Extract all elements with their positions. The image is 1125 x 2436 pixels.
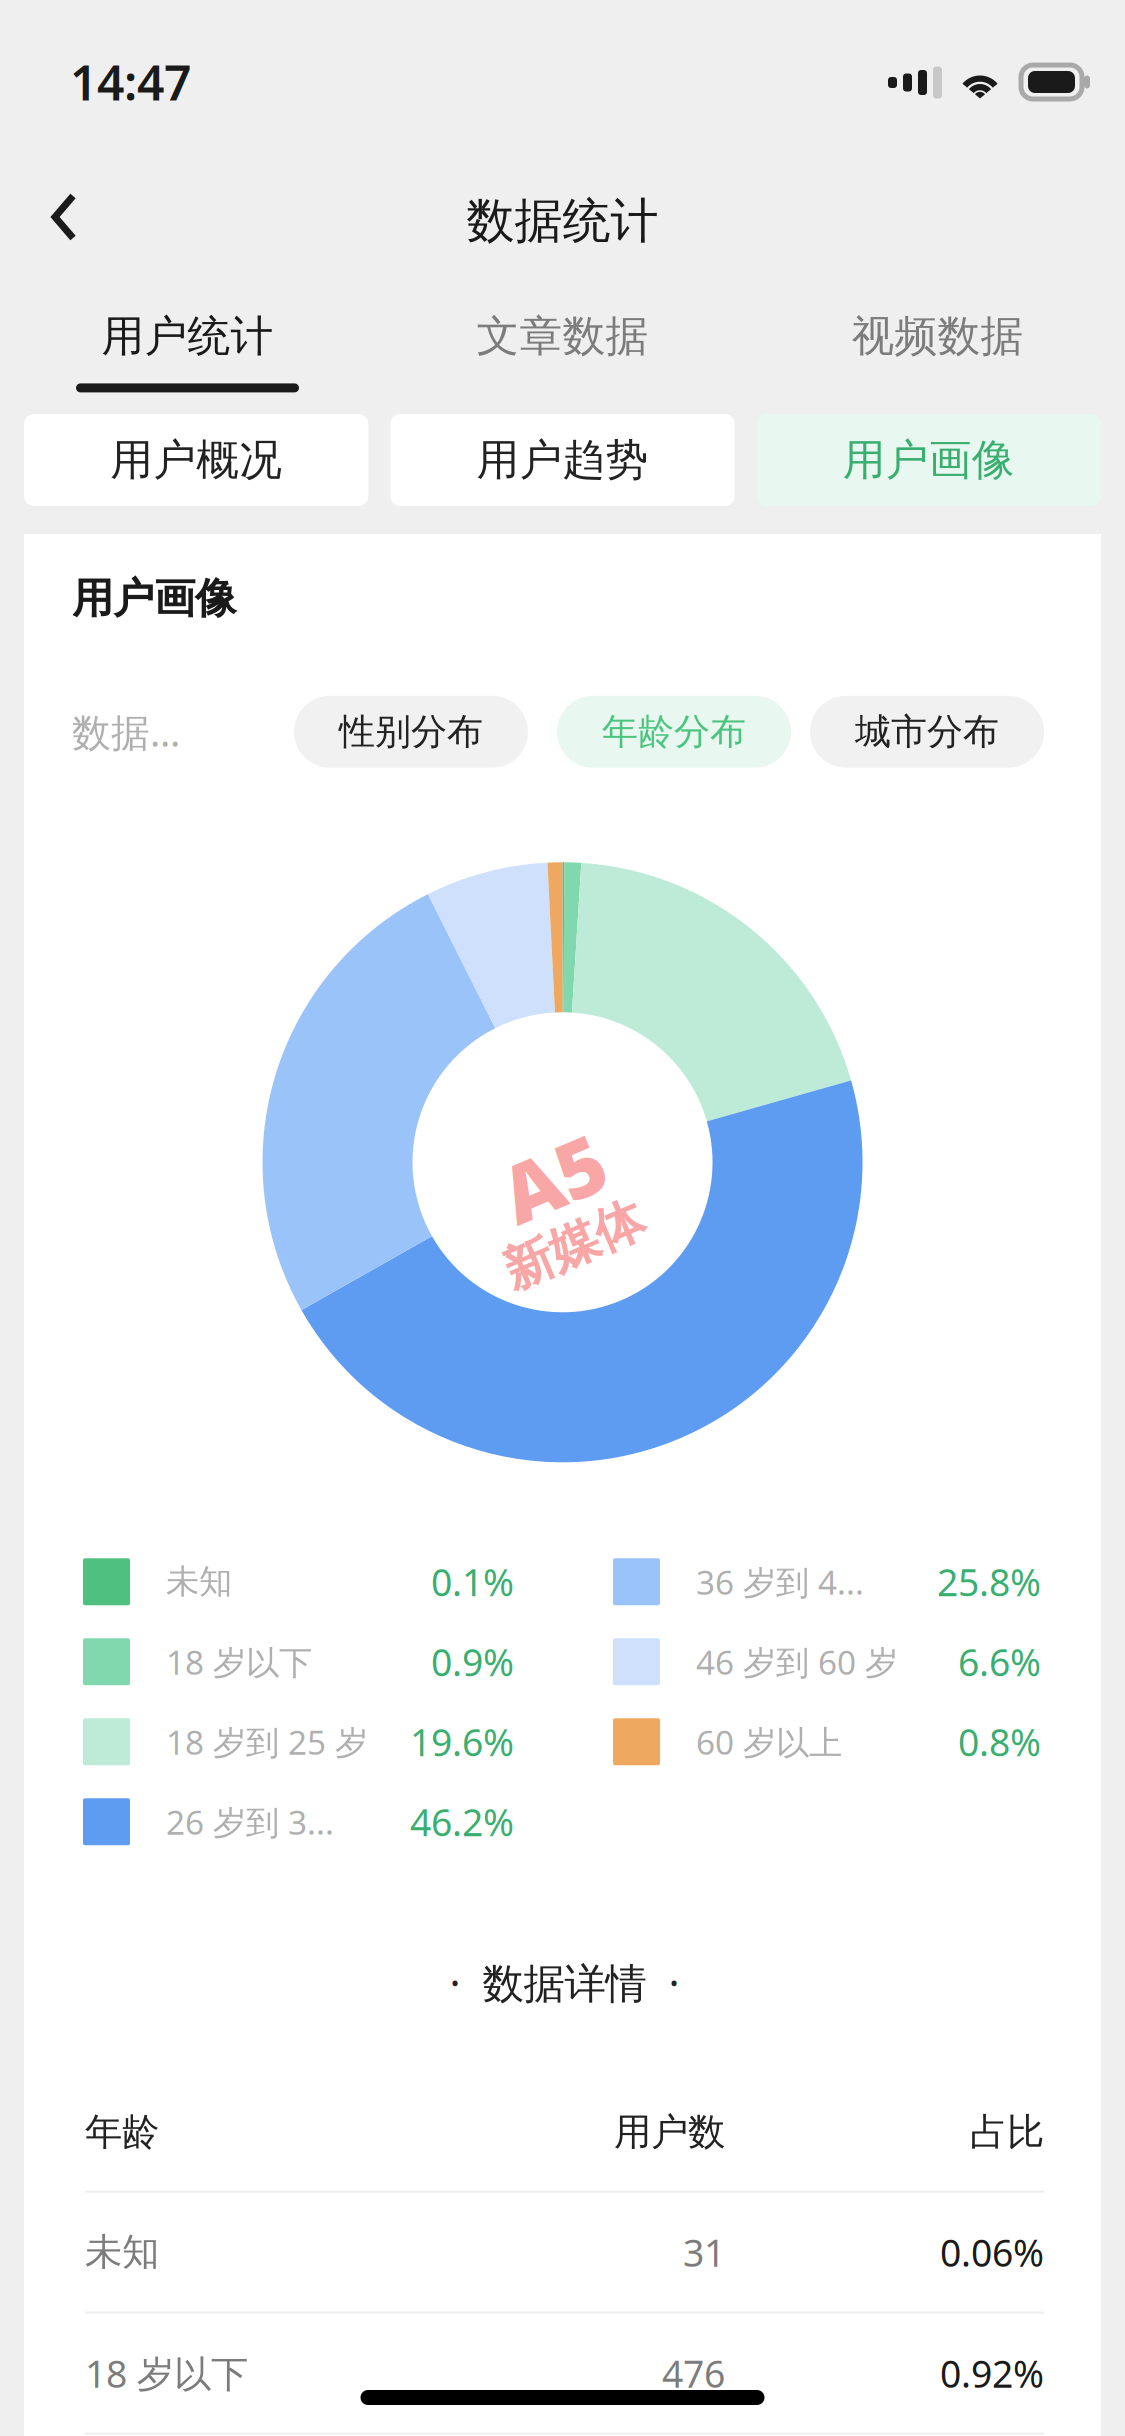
- staticText: 26 岁到 3...: [166, 1800, 334, 1844]
- staticText: A5: [501, 1124, 606, 1230]
- button[interactable]: Back: [19, 168, 109, 274]
- staticText: 数据统计: [466, 191, 658, 250]
- staticText: 数据...: [72, 706, 180, 757]
- staticText: 文章数据: [476, 310, 648, 362]
- staticText: 25.8%: [937, 1557, 1041, 1607]
- staticText: 城市分布: [855, 710, 999, 754]
- staticText: 0.06%: [940, 2227, 1044, 2277]
- staticText: 0.8%: [958, 1717, 1041, 1767]
- staticText: 未知: [166, 1561, 232, 1602]
- button[interactable]: 性别分布: [294, 696, 528, 768]
- staticText: 用户统计: [101, 310, 273, 362]
- staticText: 18 岁以下: [85, 2348, 248, 2398]
- staticText: 年龄分布: [602, 710, 746, 754]
- staticText: 18 岁以下: [166, 1640, 312, 1684]
- staticText: 6.6%: [958, 1637, 1041, 1687]
- staticText: · 数据详情 ·: [449, 1955, 679, 2010]
- staticText: 60 岁以上: [696, 1720, 842, 1764]
- staticText: 用户概况: [110, 434, 282, 486]
- button[interactable]: 城市分布: [810, 696, 1044, 768]
- button[interactable]: 用户趋势: [390, 414, 735, 506]
- staticText: 18 岁到 25 岁: [166, 1720, 368, 1764]
- staticText: 0.1%: [431, 1557, 514, 1607]
- staticText: 46.2%: [410, 1797, 514, 1847]
- staticText: 14:47: [70, 50, 191, 114]
- staticText: 用户数: [614, 2109, 725, 2155]
- button[interactable]: 用户概况: [24, 414, 368, 506]
- staticText: 视频数据: [851, 310, 1023, 362]
- button[interactable]: 年龄分布: [557, 696, 791, 768]
- staticText: 年龄: [85, 2109, 159, 2155]
- button[interactable]: 用户画像: [757, 414, 1101, 506]
- staticText: 性别分布: [339, 710, 483, 754]
- staticText: 19.6%: [410, 1717, 514, 1767]
- staticText: 用户画像: [843, 434, 1015, 486]
- button[interactable]: 文章数据: [375, 278, 750, 398]
- staticText: 476: [662, 2348, 725, 2398]
- staticText: 未知: [85, 2229, 159, 2275]
- staticText: 31: [683, 2227, 725, 2277]
- staticText: 46 岁到 60 岁: [696, 1640, 898, 1684]
- staticText: 0.92%: [940, 2348, 1044, 2398]
- staticText: 36 岁到 4...: [696, 1560, 864, 1604]
- staticText: 用户画像: [72, 573, 236, 624]
- staticText: 新媒体: [500, 1215, 647, 1276]
- button[interactable]: 视频数据: [750, 278, 1125, 398]
- staticText: 占比: [970, 2109, 1044, 2155]
- staticText: 0.9%: [431, 1637, 514, 1687]
- staticText: 用户趋势: [476, 434, 648, 486]
- button[interactable]: 用户统计: [0, 278, 375, 398]
